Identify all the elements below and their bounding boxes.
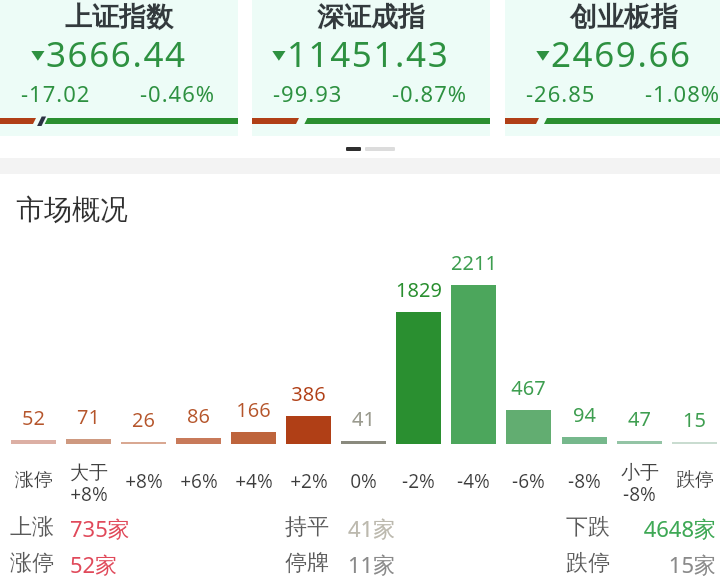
staticText: 涨停 <box>10 549 54 577</box>
staticText: 94 <box>573 401 596 428</box>
staticText: 26 <box>132 406 155 433</box>
staticText: +2% <box>290 468 328 494</box>
staticText: 1829 <box>396 276 442 303</box>
staticText: 创业板指 <box>570 0 678 34</box>
staticText: +8% <box>125 468 163 494</box>
button[interactable]: 创业板指 <box>505 0 720 136</box>
staticText: -2% <box>402 468 435 494</box>
staticText: -99.93 <box>273 78 343 108</box>
staticText: -26.85 <box>526 78 596 108</box>
staticText: 持平 <box>285 513 329 541</box>
staticText: 停牌 <box>285 549 329 577</box>
staticText: 上证指数 <box>65 0 173 34</box>
staticText: -17.02 <box>21 78 91 108</box>
staticText: 71 <box>77 403 100 430</box>
staticText: -8% <box>568 468 601 494</box>
staticText: 386 <box>291 380 326 407</box>
staticText: 市场概况 <box>16 192 128 227</box>
staticText: 4648家 <box>0 513 716 543</box>
staticText: 41 <box>352 405 375 432</box>
staticText: 166 <box>236 396 271 423</box>
button[interactable]: 上证指数 <box>0 0 238 136</box>
staticText: 涨停 <box>15 468 53 492</box>
staticText: 11451.43 <box>287 30 450 78</box>
staticText: +6% <box>180 468 218 494</box>
staticText: 跌停 <box>676 468 714 492</box>
staticText: -1.08% <box>645 78 720 108</box>
staticText: 41家 <box>348 513 396 543</box>
staticText: -0.46% <box>140 78 216 108</box>
staticText: -8% <box>623 481 656 507</box>
staticText: 15家 <box>0 549 716 579</box>
staticText: +8% <box>70 481 108 507</box>
staticText: 86 <box>187 402 210 429</box>
staticText: -4% <box>457 468 490 494</box>
staticText: 跌停 <box>566 549 610 577</box>
staticText: 52 <box>22 404 45 431</box>
staticText: 上涨 <box>10 513 54 541</box>
staticText: 15 <box>683 406 706 433</box>
staticText: 735家 <box>70 513 130 543</box>
staticText: 深证成指 <box>317 0 425 34</box>
staticText: 下跌 <box>566 513 610 541</box>
staticText: 大于 <box>70 461 108 485</box>
staticText: 47 <box>628 405 651 432</box>
staticText: -6% <box>512 468 545 494</box>
staticText: 2469.66 <box>551 30 692 78</box>
staticText: 52家 <box>70 549 118 579</box>
staticText: 小于 <box>621 461 659 485</box>
staticText: 0% <box>350 468 377 494</box>
staticText: 3666.44 <box>46 30 187 78</box>
button[interactable]: 深证成指 <box>252 0 490 136</box>
staticText: 467 <box>511 374 546 401</box>
staticText: 2211 <box>451 249 497 276</box>
staticText: 11家 <box>348 549 396 579</box>
staticText: -0.87% <box>392 78 468 108</box>
staticText: +4% <box>235 468 273 494</box>
